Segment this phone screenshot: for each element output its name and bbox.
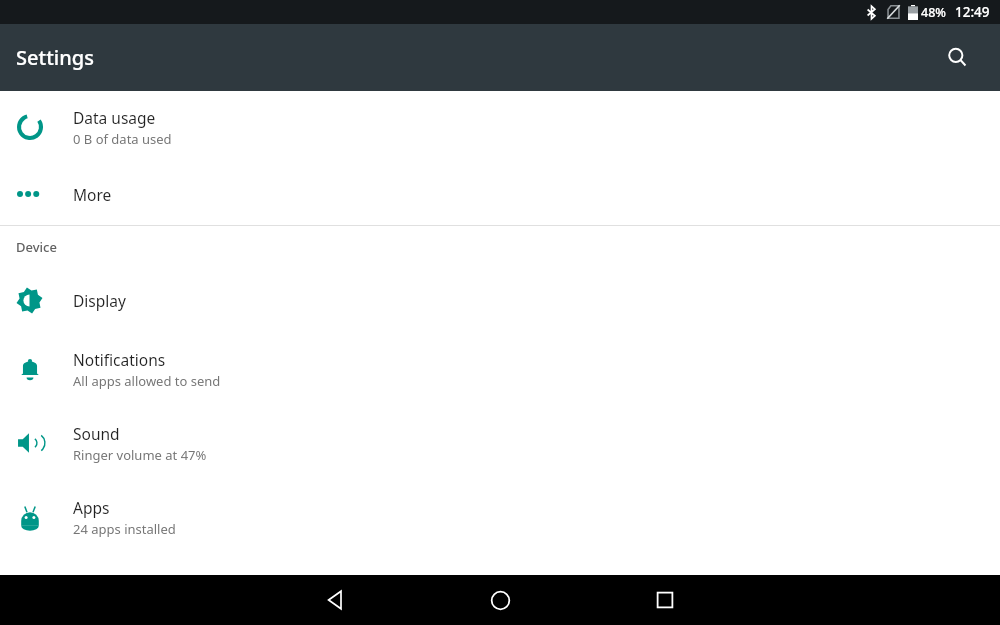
staticText: Data usage	[73, 107, 156, 128]
staticText: Ringer volume at 47%	[73, 446, 207, 464]
staticText: Display	[73, 290, 126, 311]
button[interactable]: Search	[936, 36, 980, 80]
staticText: 0 B of data used	[73, 130, 172, 148]
staticText: Sound	[73, 423, 120, 444]
button[interactable]: Apps	[0, 480, 1000, 554]
staticText: 12:49	[955, 3, 990, 21]
staticText: Settings	[16, 44, 94, 71]
button[interactable]: Recents	[637, 575, 693, 625]
button[interactable]: Data usage	[0, 91, 1000, 163]
button[interactable]: Back	[307, 575, 363, 625]
button[interactable]: Notifications	[0, 332, 1000, 406]
button[interactable]: Home	[472, 575, 528, 625]
button[interactable]: Sound	[0, 406, 1000, 480]
staticText: Apps	[73, 497, 110, 518]
staticText: Device	[16, 238, 57, 256]
button[interactable]: Display	[0, 268, 1000, 332]
staticText: More	[73, 184, 112, 205]
staticText: 48%	[921, 4, 946, 21]
staticText: All apps allowed to send	[73, 372, 221, 390]
staticText: Notifications	[73, 349, 166, 370]
button[interactable]: More	[0, 163, 1000, 225]
staticText: 24 apps installed	[73, 520, 176, 538]
